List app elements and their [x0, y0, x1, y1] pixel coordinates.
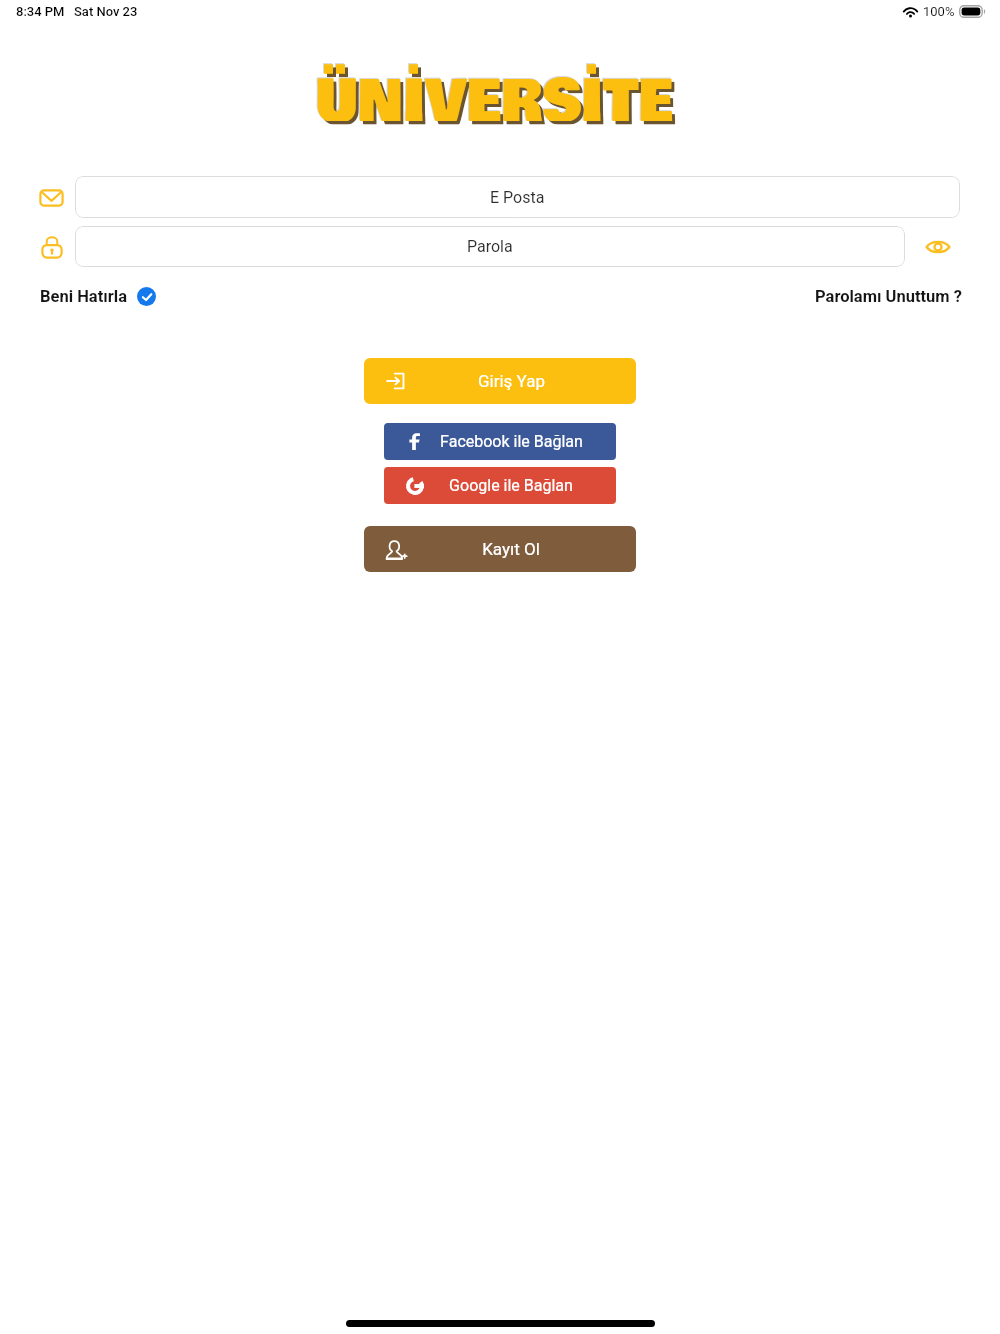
staticText: Parola — [467, 237, 513, 256]
button[interactable]: Parolamı Unuttum ? — [799, 282, 978, 311]
button[interactable]: E Posta — [75, 176, 960, 218]
staticText: 8:34 PM — [16, 4, 65, 19]
staticText: E Posta — [490, 188, 545, 207]
staticText: Google ile Bağlan — [449, 476, 573, 495]
staticText: Parolamı Unuttum ? — [815, 287, 962, 306]
button[interactable]: Google ile Bağlan — [384, 467, 616, 504]
staticText: UNIVERSITE — [315, 57, 673, 121]
staticText: Facebook ile Bağlan — [440, 432, 583, 451]
button[interactable]: Beni Hatırla — [24, 282, 172, 311]
staticText: Sat Nov 23 — [74, 4, 138, 19]
staticText: Giriş Yap — [478, 371, 545, 391]
button[interactable]: Giriş Yap — [364, 358, 636, 404]
button[interactable]: Facebook ile Bağlan — [384, 423, 616, 460]
button[interactable]: Show password — [914, 223, 962, 271]
staticText: UNIVERSITE — [314, 56, 672, 120]
button[interactable]: Kayıt Ol — [364, 526, 636, 572]
staticText: UNIVERSITE — [318, 60, 676, 124]
button[interactable]: Parola — [75, 226, 905, 267]
staticText: Kayıt Ol — [482, 539, 540, 559]
staticText: 100% — [923, 4, 955, 19]
staticText: Beni Hatırla — [40, 287, 127, 306]
